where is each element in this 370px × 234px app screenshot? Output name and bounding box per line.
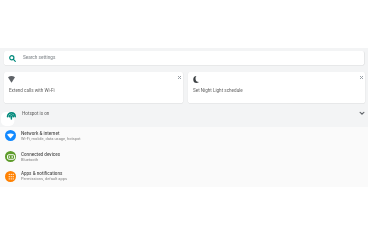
button[interactable]: Dismiss suggestion — [358, 74, 365, 81]
staticText: Search settings — [23, 55, 56, 61]
button[interactable]: Search settings — [4, 51, 364, 65]
button[interactable]: Set Night Light schedule — [188, 72, 365, 103]
staticText: Hotspot is on — [22, 111, 50, 116]
staticText: Apps & notifications — [21, 171, 63, 176]
staticText: Extend calls with Wi-Fi — [9, 88, 55, 93]
button[interactable]: Hotspot is on — [0, 103, 368, 127]
staticText: Connected devices — [21, 152, 61, 157]
button[interactable]: Extend calls with Wi-Fi — [4, 72, 183, 103]
staticText: Wi-Fi, mobile, data usage, hotspot — [21, 136, 81, 141]
staticText: Set Night Light schedule — [193, 88, 243, 93]
staticText: Permissions, default apps — [21, 176, 68, 181]
staticText: Network & internet — [21, 131, 60, 136]
button[interactable]: Apps & notifications — [0, 167, 368, 185]
button[interactable]: Connected devices — [0, 146, 368, 167]
other: Expand — [359, 110, 365, 116]
button[interactable]: Dismiss suggestion — [176, 74, 183, 81]
staticText: Bluetooth — [21, 157, 39, 162]
button[interactable]: Network & internet — [0, 125, 368, 146]
